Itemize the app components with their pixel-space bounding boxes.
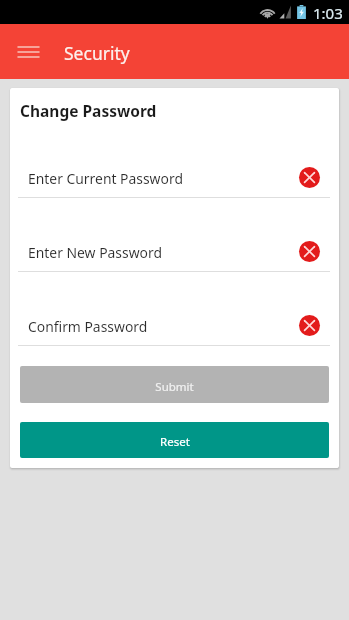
button[interactable]: Submit	[20, 366, 329, 403]
staticText: Submit	[155, 379, 194, 395]
staticText: 1:03	[313, 3, 343, 23]
button[interactable]: Confirm Password	[18, 315, 330, 340]
button[interactable]: Enter Current Password	[18, 167, 330, 192]
button[interactable]: Enter New Password	[18, 241, 330, 266]
staticText: Change Password	[20, 100, 157, 121]
staticText: Enter New Password	[28, 243, 162, 262]
staticText: Enter Current Password	[28, 169, 183, 188]
button[interactable]: Error in Enter Current Password	[299, 167, 320, 188]
button[interactable]: Reset	[20, 422, 329, 458]
staticText: Confirm Password	[28, 317, 148, 336]
button[interactable]: Error in Enter New Password	[299, 241, 320, 262]
staticText: Security	[64, 41, 130, 65]
staticText: Reset	[160, 434, 190, 450]
button[interactable]: Error in Confirm Password	[299, 315, 320, 336]
button[interactable]: Open navigation menu	[9, 33, 47, 71]
